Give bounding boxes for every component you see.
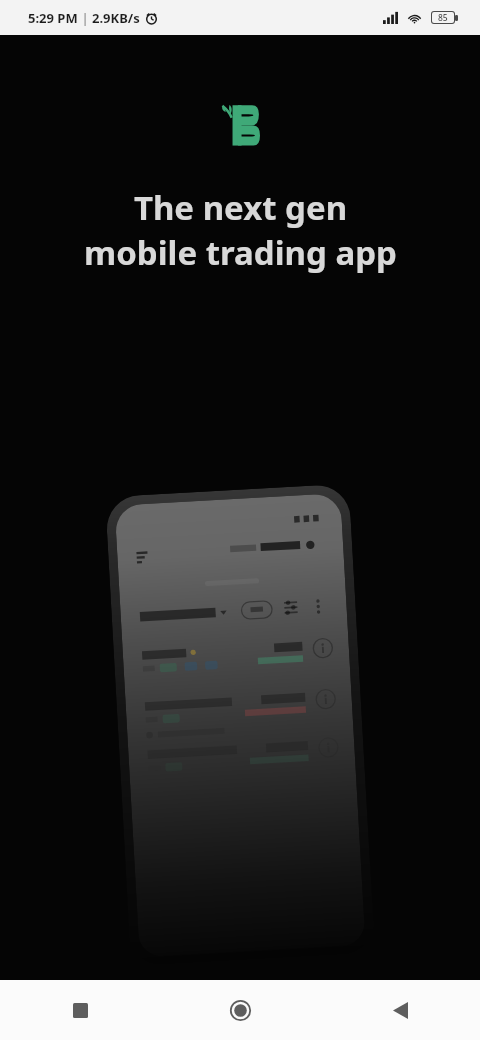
staticText: 5:29 PM xyxy=(28,9,78,27)
staticText: The next gen mobile trading app xyxy=(84,185,397,274)
button[interactable]: Home xyxy=(160,980,320,1040)
other: App logo xyxy=(218,99,262,147)
staticText: 85 xyxy=(438,12,448,23)
button[interactable]: Back xyxy=(320,980,480,1040)
button[interactable]: Recent apps xyxy=(0,980,160,1040)
staticText: | xyxy=(78,9,92,27)
staticText: 2.9KB/s xyxy=(92,9,140,27)
